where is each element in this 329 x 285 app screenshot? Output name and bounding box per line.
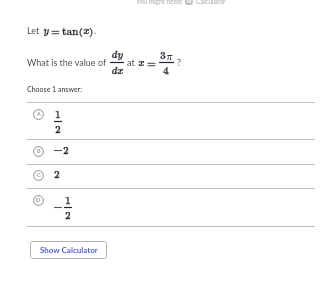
staticText: y bbox=[43, 23, 49, 38]
button[interactable]: Show Calculator bbox=[30, 241, 107, 259]
staticText: y bbox=[43, 23, 49, 38]
staticText: . bbox=[94, 25, 97, 36]
staticText: 1 bbox=[65, 193, 71, 207]
staticText: at bbox=[127, 57, 135, 68]
staticText: B bbox=[37, 148, 41, 155]
staticText: What is the value of bbox=[27, 57, 107, 68]
staticText: Let bbox=[27, 25, 40, 36]
staticText: x bbox=[83, 23, 89, 38]
staticText: A bbox=[37, 111, 41, 118]
staticText: 3 bbox=[160, 48, 166, 62]
staticText: dy bbox=[111, 47, 123, 62]
staticText: 2 bbox=[55, 122, 61, 136]
staticText: 2 bbox=[54, 167, 60, 181]
button[interactable]: D bbox=[27, 188, 315, 225]
staticText: ? bbox=[177, 57, 182, 68]
staticText: D bbox=[36, 197, 41, 204]
staticText: dx bbox=[111, 63, 123, 78]
staticText: ) bbox=[89, 24, 94, 38]
staticText: 𝝅 bbox=[166, 52, 173, 62]
staticText: 2 bbox=[63, 143, 69, 157]
staticText: 2 bbox=[65, 208, 71, 222]
staticText: Choose 1 answer: bbox=[27, 85, 82, 93]
staticText: tan( bbox=[62, 24, 83, 38]
staticText: tan( bbox=[62, 24, 83, 38]
staticText: dy bbox=[111, 47, 123, 62]
staticText: ) bbox=[89, 24, 94, 38]
staticText: x bbox=[83, 23, 89, 38]
staticText: 4 bbox=[163, 63, 169, 77]
staticText: = bbox=[51, 24, 60, 38]
staticText: You might need: bbox=[136, 0, 183, 5]
staticText: = bbox=[147, 56, 156, 70]
staticText: 1 bbox=[55, 107, 61, 121]
staticText: dx bbox=[111, 63, 123, 78]
button[interactable]: A bbox=[27, 102, 315, 138]
staticText: 3 bbox=[160, 48, 166, 62]
staticText: 2 bbox=[65, 208, 71, 222]
staticText: 2 bbox=[63, 143, 69, 157]
staticText: = bbox=[147, 56, 156, 70]
staticText: x bbox=[138, 55, 144, 70]
staticText: = bbox=[51, 24, 60, 38]
staticText: 2 bbox=[55, 122, 61, 136]
button[interactable]: You might need: Calculator bbox=[0, 0, 226, 5]
staticText: 2 bbox=[54, 167, 60, 181]
button[interactable]: C bbox=[27, 164, 315, 189]
staticText: 4 bbox=[163, 63, 169, 77]
staticText: 1 bbox=[65, 193, 71, 207]
staticText: C bbox=[37, 172, 41, 179]
staticText: Show Calculator bbox=[40, 245, 98, 255]
staticText: 1 bbox=[55, 107, 61, 121]
staticText: Calculator bbox=[196, 0, 226, 5]
staticText: x bbox=[138, 55, 144, 70]
button[interactable]: B bbox=[27, 139, 315, 164]
